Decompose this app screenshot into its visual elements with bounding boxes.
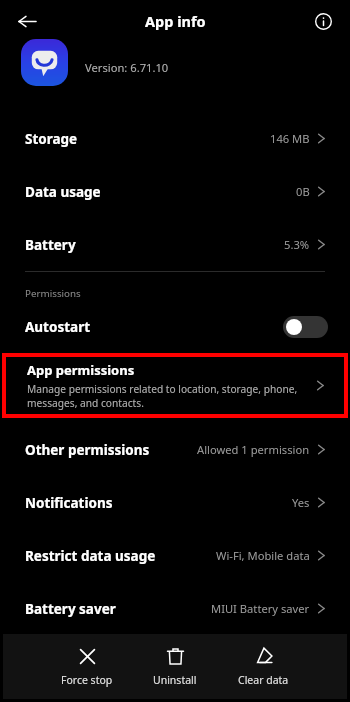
staticText: Force stop bbox=[61, 673, 113, 687]
button[interactable]: Restrict data usage bbox=[0, 529, 350, 582]
staticText: Permissions bbox=[25, 287, 81, 300]
button[interactable]: App permissions bbox=[6, 357, 344, 414]
staticText: 5.3% bbox=[284, 237, 310, 252]
staticText: Storage bbox=[25, 130, 78, 148]
staticText: Battery saver bbox=[25, 600, 116, 618]
staticText: Allowed 1 permission bbox=[197, 442, 310, 457]
staticText: Data usage bbox=[25, 183, 101, 201]
staticText: Battery bbox=[25, 236, 76, 254]
button[interactable]: Uninstall bbox=[131, 640, 219, 693]
staticText: Restrict data usage bbox=[25, 547, 156, 565]
staticText: Manage permissions related to location, … bbox=[27, 382, 306, 410]
staticText: 0B bbox=[296, 184, 310, 199]
button[interactable]: Clear data bbox=[219, 640, 307, 693]
button[interactable]: Force stop bbox=[43, 640, 131, 693]
button[interactable]: Battery saver bbox=[0, 582, 350, 635]
staticText: Uninstall bbox=[153, 673, 197, 687]
button[interactable]: Autostart toggle, off bbox=[283, 316, 328, 338]
staticText: MIUI Battery saver bbox=[211, 601, 310, 616]
button[interactable]: Storage bbox=[0, 112, 350, 165]
staticText: Clear data bbox=[238, 673, 289, 687]
staticText: Autostart bbox=[25, 318, 91, 336]
button[interactable]: Battery bbox=[0, 218, 350, 271]
button[interactable]: Data usage bbox=[0, 165, 350, 218]
staticText: Wi-Fi, Mobile data bbox=[216, 548, 310, 563]
staticText: Version: 6.71.10 bbox=[85, 60, 169, 75]
staticText: 146 MB bbox=[270, 131, 310, 146]
button[interactable]: Notifications bbox=[0, 476, 350, 529]
staticText: Notifications bbox=[25, 494, 113, 512]
button[interactable]: Autostart bbox=[0, 309, 350, 345]
staticText: App permissions bbox=[27, 361, 135, 379]
button[interactable]: Other permissions bbox=[0, 423, 350, 476]
button[interactable]: Back bbox=[9, 3, 45, 39]
button[interactable]: About app bbox=[306, 4, 340, 38]
staticText: Other permissions bbox=[25, 441, 150, 459]
staticText: App info bbox=[145, 11, 206, 31]
staticText: Yes bbox=[292, 495, 310, 510]
